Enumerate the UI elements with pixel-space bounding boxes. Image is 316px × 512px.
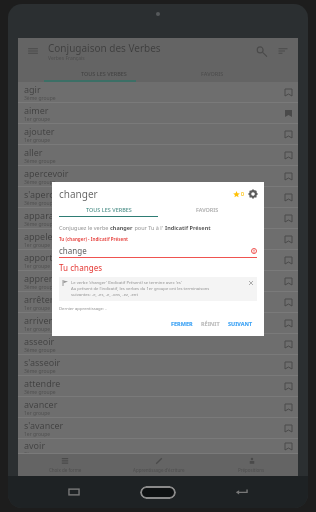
button[interactable]: TOUS LES VERBES: [59, 206, 158, 213]
staticText: Tu (changer) - Indicatif Présent: [59, 236, 129, 242]
button[interactable]: FERMER: [167, 318, 197, 329]
button[interactable]: aller: [18, 145, 298, 166]
staticText: 1er groupe: [24, 431, 51, 438]
button[interactable]: Menu: [26, 44, 40, 58]
button[interactable]: RÉINIT: [197, 318, 224, 329]
staticText: 3ème groupe: [24, 284, 56, 291]
staticText: 3ème groupe: [24, 158, 56, 165]
button[interactable]: Close hint: [248, 280, 254, 286]
staticText: apercevoir: [24, 167, 69, 179]
staticText: arrêter: [24, 293, 54, 305]
staticText: 0: [241, 191, 244, 198]
button[interactable]: apporter: [18, 250, 298, 271]
staticText: s'apercevoir: [24, 188, 75, 200]
staticText: ajouter: [24, 125, 55, 137]
staticText: changer: [59, 187, 98, 201]
button[interactable]: FAVORIS: [158, 206, 257, 213]
button[interactable]: Back: [233, 483, 251, 501]
staticText: arriver: [24, 314, 53, 326]
staticText: aller: [24, 146, 43, 158]
button[interactable]: ajouter: [18, 124, 298, 145]
staticText: 3ème groupe: [24, 95, 56, 102]
staticText: attendre: [24, 377, 61, 389]
staticText: 3ème groupe: [24, 347, 56, 354]
staticText: s'avancer: [24, 419, 64, 431]
staticText: Tu changes: [59, 262, 103, 273]
staticText: TOUS LES VERBES: [81, 70, 127, 77]
staticText: 3ème groupe: [24, 179, 56, 186]
staticText: change: [59, 245, 87, 256]
staticText: SUIVANT: [228, 320, 253, 327]
button[interactable]: apparaître: [18, 208, 298, 229]
staticText: Verbes Français: [48, 55, 85, 62]
staticText: Apprentissage d'écriture: [133, 467, 185, 473]
button[interactable]: arriver: [18, 313, 298, 334]
button[interactable]: asseoir: [18, 334, 298, 355]
button[interactable]: avancer: [18, 397, 298, 418]
staticText: Le verbe 'changer' (Indicatif Présent) s…: [71, 280, 182, 286]
staticText: Indicatif Présent: [165, 224, 211, 231]
staticText: 1er groupe: [24, 305, 51, 312]
staticText: changer: [110, 224, 133, 231]
button[interactable]: avoir: [18, 439, 298, 454]
button[interactable]: SUIVANT: [224, 318, 257, 329]
button[interactable]: s'avancer: [18, 418, 298, 439]
staticText: FERMER: [171, 320, 193, 327]
staticText: 3ème groupe: [24, 368, 56, 375]
staticText: Au présent de l'indicatif, les verbes du…: [71, 286, 210, 292]
staticText: s'asseoir: [24, 356, 61, 368]
staticText: 1er groupe: [24, 326, 51, 333]
staticText: agir: [24, 83, 41, 95]
button[interactable]: arrêter: [18, 292, 298, 313]
staticText: apparaître: [24, 209, 68, 221]
staticText: avoir: [24, 439, 46, 451]
staticText: apprendre: [24, 272, 69, 284]
staticText: 1er groupe: [24, 410, 51, 417]
button[interactable]: Favorite: [233, 191, 244, 198]
button[interactable]: Recents: [65, 483, 83, 501]
staticText: Prépositions: [238, 467, 265, 473]
staticText: asseoir: [24, 335, 55, 347]
button[interactable]: Settings: [249, 190, 257, 198]
staticText: Dernier apprentissage: -: [59, 306, 107, 312]
button[interactable]: s'apercevoir: [18, 187, 298, 208]
staticText: TOUS LES VERBES: [86, 206, 132, 213]
staticText: FAVORIS: [201, 70, 224, 77]
staticText: 1er groupe: [24, 116, 51, 123]
staticText: 3ème groupe: [24, 221, 56, 228]
staticText: FAVORIS: [196, 206, 219, 213]
staticText: Conjugaison des Verbes: [48, 41, 161, 55]
button[interactable]: appeler: [18, 229, 298, 250]
button[interactable]: apercevoir: [18, 166, 298, 187]
button[interactable]: apprendre: [18, 271, 298, 292]
staticText: appeler: [24, 230, 57, 242]
button[interactable]: TOUS LES VERBES: [49, 64, 158, 82]
button[interactable]: attendre: [18, 376, 298, 397]
staticText: 3ème groupe: [24, 389, 56, 396]
staticText: RÉINIT: [201, 320, 220, 327]
staticText: suivantes: -e, -es, -e, -ons, -ez, -ent: [71, 292, 138, 298]
staticText: 1er groupe: [24, 263, 51, 270]
staticText: 1er groupe: [24, 242, 51, 249]
staticText: 1er groupe: [24, 137, 51, 144]
staticText: Choix de forme: [49, 467, 82, 473]
staticText: aimer: [24, 104, 49, 116]
staticText: 3ème groupe: [24, 451, 56, 454]
button[interactable]: s'asseoir: [18, 355, 298, 376]
button[interactable]: Search: [254, 44, 268, 58]
button[interactable]: agir: [18, 82, 298, 103]
staticText: apporter: [24, 251, 62, 263]
button[interactable]: aimer: [18, 103, 298, 124]
button[interactable]: Sort: [276, 44, 290, 58]
staticText: 3ème groupe: [24, 200, 56, 207]
button[interactable]: Home: [140, 486, 176, 499]
staticText: pour Tu à l': [133, 224, 165, 231]
staticText: Conjuguez le verbe: [59, 224, 110, 231]
staticText: avancer: [24, 398, 58, 410]
